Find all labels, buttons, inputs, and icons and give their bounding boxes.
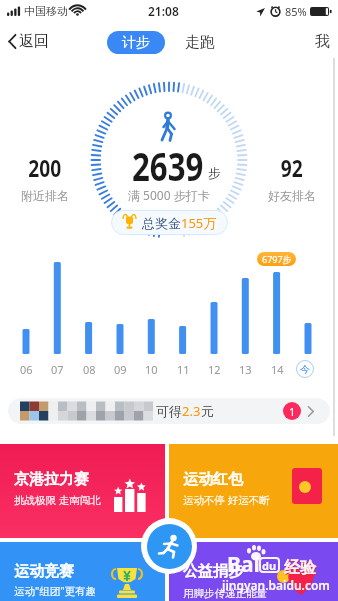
staticText: 总奖金 bbox=[142, 215, 181, 231]
staticText: 06 bbox=[20, 362, 33, 377]
staticText: 走跑 bbox=[185, 33, 215, 52]
staticText: 运动红包 bbox=[183, 470, 243, 489]
staticText: 14 bbox=[271, 362, 284, 377]
staticText: 08 bbox=[83, 362, 96, 377]
staticText: 155万 bbox=[181, 214, 217, 232]
button[interactable]: 运动红包 bbox=[169, 444, 338, 538]
button[interactable]: 可得 bbox=[8, 398, 330, 424]
button[interactable]: 总奖金 bbox=[111, 210, 228, 235]
button[interactable] bbox=[141, 518, 197, 574]
staticText: 11 bbox=[177, 362, 190, 377]
staticText: 好友排名 bbox=[268, 188, 316, 203]
staticText: 计步 bbox=[122, 34, 150, 52]
staticText: 12 bbox=[208, 362, 221, 377]
staticText: 返回 bbox=[19, 32, 49, 51]
staticText: 可得 bbox=[156, 403, 182, 419]
staticText: 运动"组团"更有趣 bbox=[14, 584, 97, 598]
staticText: 满 5000 步打卡 bbox=[128, 187, 210, 203]
staticText: 2.3 bbox=[182, 402, 201, 420]
staticText: 中国移动 bbox=[24, 4, 68, 18]
staticText: 2639 bbox=[132, 139, 204, 192]
staticText: 今 bbox=[300, 363, 310, 376]
button[interactable]: 今 bbox=[296, 360, 314, 378]
staticText: du bbox=[262, 558, 277, 573]
staticText: 运动竞赛 bbox=[14, 562, 74, 581]
staticText: 元 bbox=[201, 403, 214, 419]
button[interactable]: 京港拉力赛 bbox=[0, 444, 165, 538]
button[interactable]: 返回 bbox=[8, 32, 49, 51]
staticText: 用脚步传递正能量 bbox=[183, 587, 267, 600]
button[interactable]: 我 bbox=[315, 32, 330, 51]
staticText: jingyan.baidu.com bbox=[222, 577, 330, 593]
staticText: 09 bbox=[114, 362, 127, 377]
staticText: 经验 bbox=[284, 558, 316, 578]
button[interactable]: 计步 bbox=[107, 31, 165, 54]
staticText: Bai bbox=[227, 550, 260, 579]
staticText: 公益捐步 bbox=[183, 562, 243, 581]
staticText: 21:08 bbox=[148, 3, 179, 19]
staticText: 07 bbox=[51, 362, 64, 377]
staticText: 1 bbox=[289, 404, 296, 419]
button[interactable]: 走跑 bbox=[180, 31, 220, 54]
button[interactable]: 公益捐步 bbox=[169, 542, 338, 601]
staticText: 经验 bbox=[285, 559, 317, 579]
button[interactable]: 运动竞赛 bbox=[0, 542, 165, 601]
staticText: 13 bbox=[239, 362, 252, 377]
staticText: 10 bbox=[145, 362, 158, 377]
staticText: 92 bbox=[281, 151, 303, 184]
staticText: 附近排名 bbox=[21, 188, 69, 203]
staticText: 运动不停 好运不断 bbox=[183, 493, 270, 507]
staticText: 我 bbox=[315, 32, 330, 51]
staticText: 85% bbox=[285, 4, 307, 19]
staticText: 200 bbox=[28, 151, 62, 184]
staticText: 挑战极限 走南闯北 bbox=[14, 493, 101, 507]
staticText: 步 bbox=[208, 165, 221, 181]
staticText: 京港拉力赛 bbox=[14, 470, 89, 489]
staticText: 6797步 bbox=[262, 253, 292, 265]
